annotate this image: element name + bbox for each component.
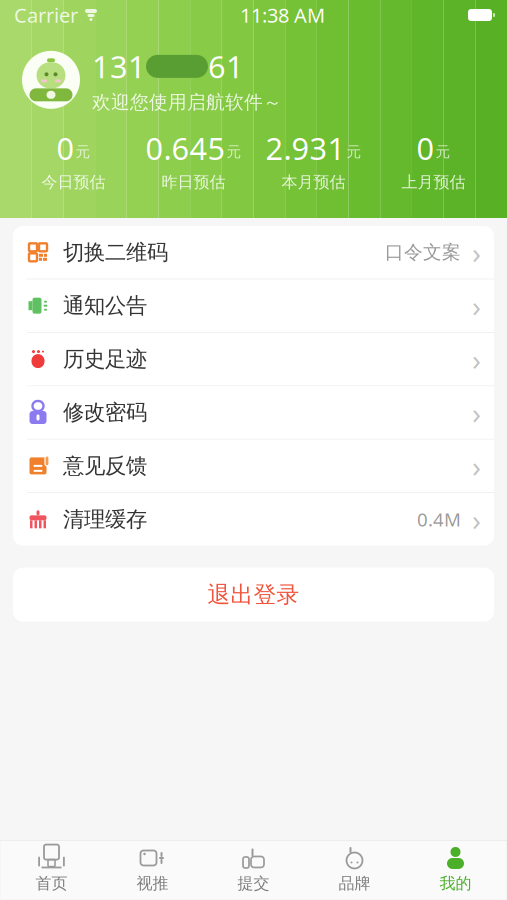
staticText: 今日预估: [41, 172, 105, 192]
button[interactable]: 退出登录: [13, 568, 494, 622]
button[interactable]: 清理缓存: [13, 493, 494, 546]
staticText: 61: [208, 46, 244, 87]
button[interactable]: 品牌: [304, 841, 405, 899]
staticText: 切换二维码: [63, 239, 168, 265]
staticText: 元: [346, 143, 361, 161]
button[interactable]: 首页: [1, 841, 102, 899]
button[interactable]: 通知公告: [13, 279, 494, 333]
staticText: ›: [472, 393, 481, 432]
staticText: ›: [472, 500, 481, 539]
staticText: 元: [435, 143, 450, 161]
staticText: 品牌: [338, 873, 370, 893]
staticText: 0: [56, 128, 74, 168]
staticText: 131: [92, 46, 146, 87]
staticText: 退出登录: [207, 581, 299, 608]
button[interactable]: 视推: [102, 841, 203, 899]
staticText: 11:38 AM: [240, 2, 325, 28]
staticText: 元: [75, 143, 90, 161]
staticText: ›: [472, 286, 481, 325]
staticText: 提交: [237, 873, 269, 893]
button[interactable]: 提交: [203, 841, 304, 899]
staticText: 本月预估: [281, 172, 345, 192]
button[interactable]: 我的: [405, 841, 506, 899]
button[interactable]: 切换二维码: [13, 226, 494, 279]
button[interactable]: 修改密码: [13, 386, 494, 440]
staticText: 2.931: [265, 128, 345, 168]
staticText: 0.645: [145, 128, 225, 168]
staticText: Carrier: [14, 2, 78, 28]
staticText: 意见反馈: [63, 453, 147, 479]
staticText: 0.4M: [417, 507, 461, 532]
staticText: 修改密码: [63, 399, 147, 426]
staticText: 口令文案: [385, 241, 461, 264]
staticText: 首页: [35, 873, 67, 893]
staticText: 清理缓存: [63, 506, 147, 532]
staticText: 欢迎您使用启航软件～: [92, 91, 282, 114]
staticText: 上月预估: [401, 172, 465, 192]
staticText: 历史足迹: [63, 346, 147, 372]
staticText: 元: [226, 143, 241, 161]
staticText: 0: [416, 128, 434, 168]
staticText: 视推: [136, 873, 168, 893]
staticText: 我的: [439, 873, 471, 893]
button[interactable]: 历史足迹: [13, 333, 494, 386]
button[interactable]: 意见反馈: [13, 440, 494, 493]
staticText: ›: [472, 233, 481, 272]
staticText: ›: [472, 446, 481, 485]
staticText: 昨日预估: [161, 172, 225, 192]
staticText: 通知公告: [63, 293, 147, 319]
staticText: ›: [472, 340, 481, 379]
